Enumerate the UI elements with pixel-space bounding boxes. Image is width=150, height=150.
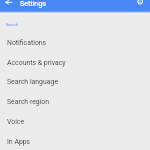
- button[interactable]: Search language: [0, 78, 150, 98]
- staticText: Search region: [7, 98, 50, 106]
- button[interactable]: Search region: [0, 98, 150, 118]
- button[interactable]: Navigate up: [2, 0, 16, 12]
- button[interactable]: Help: [134, 0, 146, 12]
- button[interactable]: Voice: [0, 118, 150, 138]
- staticText: Voice: [7, 118, 25, 126]
- staticText: Search language: [7, 78, 59, 86]
- staticText: Settings: [20, 0, 46, 7]
- staticText: In Apps: [7, 138, 31, 146]
- button[interactable]: In Apps: [0, 138, 150, 150]
- staticText: Notifications: [7, 39, 47, 47]
- staticText: Search: [6, 22, 18, 26]
- button[interactable]: Accounts & privacy: [0, 59, 150, 79]
- staticText: Accounts & privacy: [7, 59, 66, 67]
- button[interactable]: Notifications: [0, 39, 150, 59]
